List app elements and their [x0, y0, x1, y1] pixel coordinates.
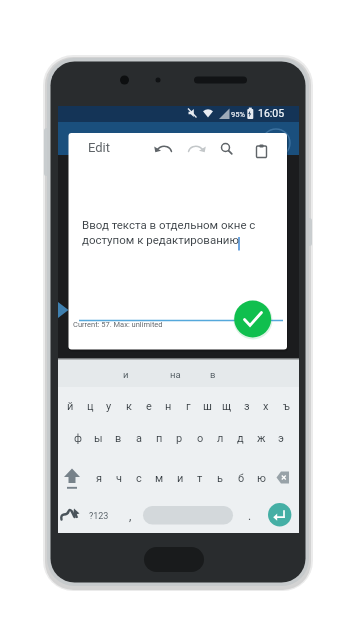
button[interactable]: м	[149, 465, 169, 491]
button[interactable]: ю	[251, 465, 271, 491]
staticText: ш	[203, 400, 212, 413]
button[interactable]	[60, 501, 84, 527]
staticText: у	[106, 400, 112, 413]
staticText: п	[156, 432, 163, 445]
button[interactable]: ж	[251, 425, 271, 451]
button[interactable]: б	[231, 465, 251, 491]
staticText: .	[248, 509, 252, 523]
button[interactable]: е	[139, 393, 159, 419]
button[interactable]: л	[210, 425, 230, 451]
staticText: ж	[257, 432, 266, 445]
button[interactable]: и	[170, 465, 190, 491]
button[interactable]: х	[256, 393, 276, 419]
staticText: и	[123, 369, 129, 380]
staticText: а	[136, 432, 142, 445]
button[interactable]: д	[230, 425, 250, 451]
button[interactable]: на	[160, 361, 190, 388]
button[interactable]	[247, 140, 267, 160]
button[interactable]: а	[129, 425, 149, 451]
button[interactable]: г	[178, 393, 198, 419]
button[interactable]: ,	[120, 503, 140, 529]
button[interactable]: о	[190, 425, 210, 451]
button[interactable]: ф	[68, 425, 88, 451]
button[interactable]: р	[169, 425, 189, 451]
staticText: е	[146, 400, 152, 413]
button[interactable]	[267, 502, 293, 528]
staticText: ъ	[283, 400, 290, 413]
staticText: ц	[87, 400, 94, 413]
button[interactable]: ы	[88, 425, 108, 451]
button[interactable]: ш	[197, 393, 217, 419]
staticText: в	[115, 432, 122, 445]
staticText: т	[197, 472, 203, 485]
staticText: Ввод текста в отдельном окне с доступом …	[82, 218, 256, 247]
button[interactable]: й	[60, 393, 80, 419]
button[interactable]: с	[129, 465, 149, 491]
button[interactable]	[62, 464, 84, 490]
staticText: ,	[129, 509, 132, 523]
staticText: й	[67, 400, 74, 413]
staticText: ?123	[89, 511, 109, 522]
staticText: л	[217, 432, 224, 445]
staticText: в	[210, 369, 216, 380]
button[interactable]: щ	[217, 393, 237, 419]
staticText: щ	[222, 400, 232, 413]
staticText: к	[126, 400, 132, 413]
staticText: х	[263, 400, 269, 413]
button[interactable]	[185, 140, 205, 160]
button[interactable]: ъ	[276, 393, 296, 419]
staticText: Current: 57. Max: unlimited	[73, 320, 163, 329]
button[interactable]: у	[99, 393, 119, 419]
staticText: Edit	[88, 140, 111, 155]
staticText: м	[155, 472, 164, 485]
staticText: ч	[116, 472, 122, 485]
button[interactable]: п	[149, 425, 169, 451]
button[interactable]: к	[119, 393, 139, 419]
button[interactable]: .	[240, 503, 260, 529]
staticText: г	[186, 400, 191, 413]
staticText: ф	[74, 432, 82, 445]
staticText: э	[278, 432, 284, 445]
staticText: б	[238, 472, 245, 485]
staticText: ь	[217, 472, 223, 485]
staticText: я	[96, 472, 103, 485]
button[interactable]: т	[190, 465, 210, 491]
button[interactable]: я	[89, 465, 109, 491]
button[interactable]: в	[108, 425, 128, 451]
button[interactable]	[143, 504, 233, 526]
button[interactable]: ?123	[84, 503, 114, 529]
button[interactable]	[272, 464, 294, 490]
staticText: о	[197, 432, 204, 445]
button[interactable]: ц	[80, 393, 100, 419]
button[interactable]: ь	[210, 465, 230, 491]
staticText: с	[136, 472, 142, 485]
button[interactable]	[234, 300, 272, 338]
staticText: з	[244, 400, 250, 413]
staticText: ю	[257, 472, 266, 485]
staticText: р	[176, 432, 183, 445]
button[interactable]: ч	[109, 465, 129, 491]
button[interactable]: э	[271, 425, 291, 451]
staticText: д	[237, 432, 244, 445]
button[interactable]: н	[158, 393, 178, 419]
button[interactable]: в	[198, 361, 228, 388]
staticText: и	[177, 472, 184, 485]
button[interactable]	[155, 140, 175, 160]
staticText: 95%	[231, 110, 245, 119]
staticText: 16:05	[258, 107, 285, 119]
button[interactable]: и	[111, 361, 141, 388]
staticText: ы	[94, 432, 103, 445]
button[interactable]: з	[237, 393, 257, 419]
button[interactable]	[217, 140, 237, 160]
staticText: на	[170, 369, 181, 380]
staticText: н	[165, 400, 172, 413]
